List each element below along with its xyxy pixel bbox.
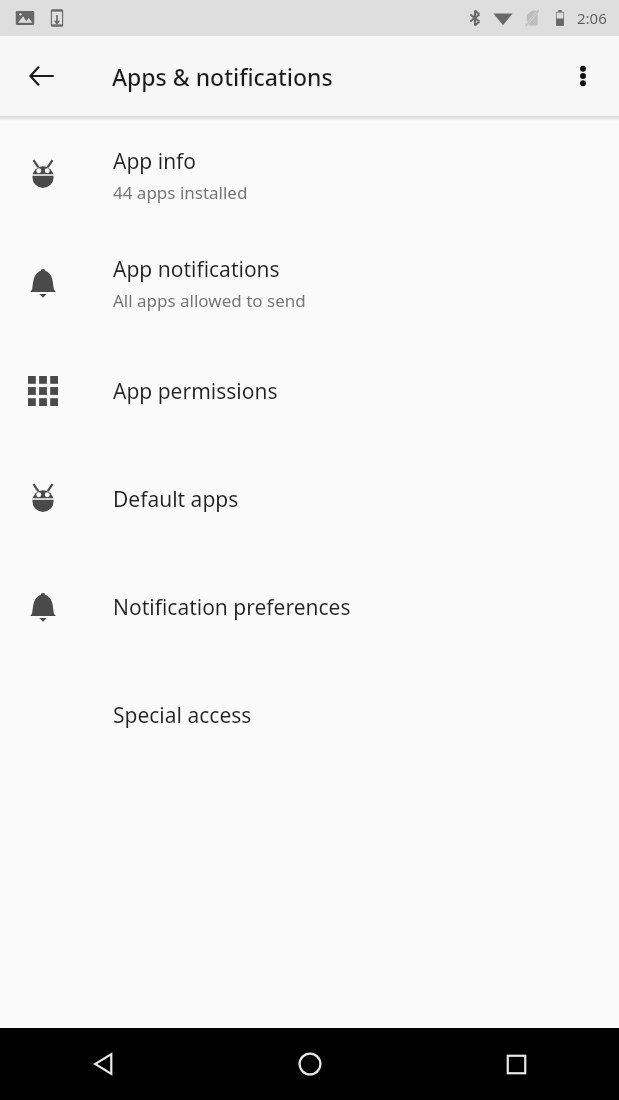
button[interactable]: Back — [18, 52, 66, 100]
staticText: App notifications — [113, 255, 280, 284]
button[interactable]: App notifications — [0, 229, 619, 337]
staticText: Default apps — [113, 485, 239, 514]
staticText: 44 apps installed — [113, 181, 248, 204]
button[interactable]: More options — [561, 54, 605, 98]
button[interactable]: Default apps — [0, 445, 619, 553]
staticText: Special access — [113, 701, 252, 730]
button[interactable]: App info — [0, 121, 619, 229]
staticText: All apps allowed to send — [113, 289, 306, 312]
staticText: App permissions — [113, 377, 278, 406]
staticText: 2:06 — [577, 8, 607, 28]
staticText: Notification preferences — [113, 593, 351, 622]
button[interactable]: Notification preferences — [0, 553, 619, 661]
button[interactable]: Back — [0, 1028, 207, 1100]
staticText: App info — [113, 147, 197, 176]
staticText: Apps & notifications — [112, 61, 333, 92]
button[interactable]: Recent apps — [413, 1028, 619, 1100]
button[interactable]: Home — [207, 1028, 413, 1100]
button[interactable]: Special access — [0, 661, 619, 769]
button[interactable]: App permissions — [0, 337, 619, 445]
